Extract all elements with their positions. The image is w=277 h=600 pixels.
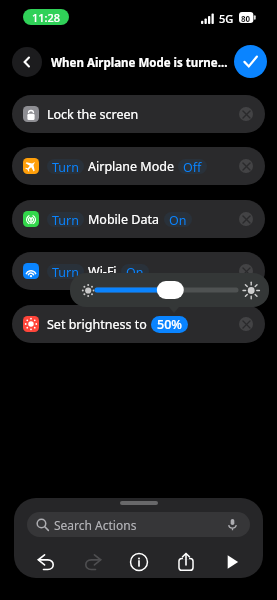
button[interactable]: Turn xyxy=(12,147,265,185)
button[interactable]: Remove action xyxy=(239,159,253,173)
staticText: 11:28 xyxy=(32,10,61,25)
staticText: Lock the screen xyxy=(47,106,139,123)
button[interactable]: Lock the screen xyxy=(12,95,265,133)
staticText: 5G xyxy=(219,11,234,26)
staticText: Off xyxy=(183,159,202,174)
button[interactable]: Undo xyxy=(33,549,59,575)
button[interactable]: Run xyxy=(219,549,245,575)
button[interactable]: Turn xyxy=(12,200,265,238)
button[interactable]: Set brightness to xyxy=(12,305,265,343)
staticText: Mobile Data xyxy=(88,211,160,228)
staticText: Set brightness to xyxy=(47,316,147,333)
staticText: Wi-Fi xyxy=(88,263,117,280)
staticText: On xyxy=(126,264,144,279)
button[interactable]: Share xyxy=(173,549,199,575)
button[interactable]: Remove action xyxy=(239,317,253,331)
button[interactable]: Remove action xyxy=(239,107,253,121)
button[interactable]: Remove action xyxy=(239,264,253,278)
staticText: Turn xyxy=(52,212,79,227)
staticText: When Airplane Mode is turne... xyxy=(51,55,228,71)
staticText: 80 xyxy=(241,13,251,24)
button[interactable]: Back xyxy=(12,47,42,77)
button[interactable]: Turn xyxy=(12,252,265,290)
other: Voice search xyxy=(226,518,239,531)
staticText: Turn xyxy=(52,159,79,174)
staticText: Airplane Mode xyxy=(88,158,174,175)
button[interactable]: Redo xyxy=(80,549,106,575)
staticText: On xyxy=(169,212,187,227)
button[interactable]: Search Actions xyxy=(27,512,250,537)
staticText: 50% xyxy=(157,316,182,333)
button[interactable]: Info xyxy=(126,549,152,575)
staticText: Turn xyxy=(52,264,79,279)
button[interactable]: Remove action xyxy=(239,212,253,226)
button[interactable]: Brightness xyxy=(70,273,269,307)
button[interactable]: Done xyxy=(234,45,267,78)
staticText: Search Actions xyxy=(54,517,137,533)
